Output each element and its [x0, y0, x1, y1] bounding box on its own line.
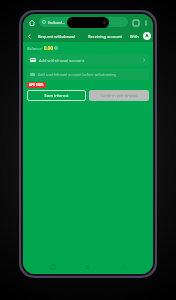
button[interactable]: Account — [143, 32, 151, 40]
staticText: Add a withdrawal account before withdraw… — [38, 72, 116, 77]
button[interactable]: Back — [118, 262, 128, 272]
staticText: Earn interest — [44, 93, 69, 98]
button[interactable]: Recent apps — [48, 262, 58, 272]
button[interactable]: Request withdrawal — [36, 30, 86, 42]
staticText: With — [130, 34, 139, 39]
button[interactable]: Add withdrawal account — [27, 54, 149, 66]
staticText: Request withdrawal — [38, 34, 76, 39]
staticText: APR 100% — [29, 83, 44, 87]
staticText: Add withdrawal account — [39, 58, 85, 63]
button[interactable]: More options — [141, 18, 150, 27]
button[interactable]: Tabs — [130, 17, 141, 28]
button[interactable]: Back — [25, 32, 34, 41]
button[interactable]: fr.cloud… — [39, 17, 128, 27]
staticText: Confirm withdrawal — [100, 93, 138, 98]
button[interactable]: Add a withdrawal account before withdraw… — [27, 69, 149, 80]
button[interactable]: Home — [83, 262, 93, 272]
staticText: Receiving account — [88, 34, 122, 39]
button[interactable]: Earn interest — [27, 90, 86, 101]
button[interactable]: Home — [26, 17, 37, 28]
staticText: 0.00 — [44, 45, 53, 51]
button[interactable]: Receiving account — [86, 30, 124, 42]
button[interactable]: With — [128, 30, 141, 42]
button[interactable]: Confirm withdrawal — [89, 90, 149, 101]
staticText: Balance — [27, 46, 42, 51]
staticText: fr.cloud… — [48, 20, 65, 25]
